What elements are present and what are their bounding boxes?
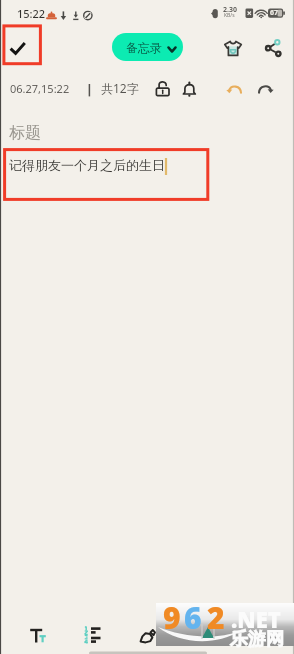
staticText: 备忘录	[126, 40, 162, 55]
button[interactable]: Reminder	[181, 80, 199, 98]
staticText: 共12字	[101, 80, 139, 96]
staticText: KB/s	[224, 12, 235, 19]
button[interactable]: Brush	[134, 621, 162, 649]
button[interactable]: Undo	[224, 80, 244, 100]
button[interactable]: Share	[262, 38, 284, 60]
staticText: 2.30	[223, 5, 237, 15]
staticText: 乐游网	[230, 628, 284, 651]
button[interactable]: Redo	[256, 80, 276, 100]
button[interactable]: Font size	[24, 621, 52, 649]
button[interactable]: Lock	[154, 80, 172, 98]
staticText: 9	[163, 597, 181, 638]
staticText: 15:22	[17, 6, 46, 21]
button[interactable]: Done	[4, 31, 36, 63]
button[interactable]: 备忘录	[112, 33, 183, 61]
staticText: 标题	[9, 123, 41, 143]
staticText: 6	[184, 597, 202, 638]
button[interactable]: Theme	[222, 39, 244, 61]
staticText: 06.27,15:22	[10, 81, 70, 96]
button[interactable]: Ordered list	[79, 621, 107, 649]
button[interactable]: More	[189, 621, 217, 649]
staticText: 记得朋友一个月之后的生日	[9, 157, 165, 173]
staticText: 67	[270, 8, 279, 18]
staticText: 2	[207, 597, 225, 638]
staticText: .NET	[231, 604, 281, 634]
